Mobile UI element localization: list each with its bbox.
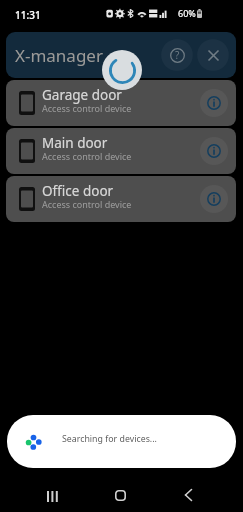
button[interactable]: Garage door — [6, 80, 236, 126]
button[interactable]: Recent apps — [32, 476, 72, 512]
button[interactable]: Searching for devices... — [7, 415, 236, 468]
button[interactable]: Home — [100, 475, 140, 512]
staticText: 60% — [178, 7, 196, 19]
staticText: Access control device — [42, 150, 132, 162]
staticText: ? — [175, 48, 180, 62]
button[interactable]: Back — [168, 475, 208, 512]
button[interactable]: Help — [159, 37, 195, 73]
staticText: Access control device — [42, 198, 132, 210]
button[interactable]: Close — [195, 37, 231, 73]
staticText: Searching for devices... — [62, 433, 157, 445]
staticText: Main door — [42, 134, 108, 152]
button[interactable]: Info — [199, 136, 229, 166]
staticText: Access control device — [42, 102, 132, 114]
button[interactable]: Main door — [6, 128, 236, 174]
staticText: 11:31 — [15, 8, 41, 22]
button[interactable]: Office door — [6, 176, 236, 222]
button[interactable]: Info — [199, 184, 229, 214]
staticText: Office door — [42, 182, 114, 200]
button[interactable]: Info — [199, 88, 229, 118]
staticText: Garage door — [42, 86, 122, 104]
staticText: X-manager — [15, 44, 103, 67]
